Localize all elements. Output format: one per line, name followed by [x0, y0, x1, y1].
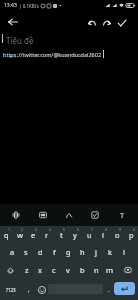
- button[interactable]: Back: [4, 13, 22, 31]
- button[interactable]: f: [47, 243, 61, 261]
- staticText: ?123: [6, 287, 16, 293]
- button[interactable]: i: [96, 226, 110, 243]
- staticText: j: [95, 247, 97, 257]
- staticText: s: [24, 247, 28, 257]
- staticText: 6: [77, 227, 80, 232]
- staticText: y: [73, 230, 77, 240]
- staticText: 8: [105, 227, 108, 232]
- staticText: g: [66, 247, 71, 257]
- button[interactable]: Emoji: [36, 279, 48, 300]
- staticText: w: [17, 230, 23, 240]
- staticText: v: [66, 265, 70, 275]
- staticText: 2: [21, 227, 24, 232]
- staticText: h: [80, 247, 85, 257]
- button[interactable]: Backspace: [117, 261, 138, 279]
- button[interactable]: x: [33, 261, 47, 279]
- button[interactable]: g: [61, 243, 75, 261]
- staticText: 3: [35, 227, 38, 232]
- button[interactable]: Clipboard: [85, 205, 105, 225]
- staticText: r: [45, 230, 49, 240]
- staticText: z: [25, 265, 29, 275]
- button[interactable]: l: [117, 243, 131, 261]
- button[interactable]: w: [13, 226, 26, 243]
- button[interactable]: z: [20, 261, 33, 279]
- staticText: o: [115, 230, 120, 240]
- button[interactable]: t: [54, 226, 68, 243]
- staticText: n: [94, 265, 99, 275]
- staticText: e: [31, 230, 36, 240]
- button[interactable]: n: [89, 261, 103, 279]
- staticText: f: [53, 247, 56, 257]
- staticText: 5: [63, 227, 66, 232]
- staticText: ://twitter.com/@kuanducdai2602: [17, 51, 102, 58]
- button[interactable]: s: [19, 243, 33, 261]
- button[interactable]: Voice input: [6, 205, 26, 225]
- button[interactable]: r: [40, 226, 54, 243]
- staticText: 4: [49, 227, 52, 232]
- staticText: u: [87, 230, 92, 240]
- button[interactable]: Redo: [99, 15, 114, 30]
- button[interactable]: q: [0, 226, 13, 243]
- button[interactable]: k: [103, 243, 117, 261]
- staticText: a: [10, 247, 15, 257]
- staticText: 7: [91, 227, 94, 232]
- button[interactable]: Handwriting: [59, 205, 79, 225]
- button[interactable]: v: [61, 261, 75, 279]
- button[interactable]: c: [47, 261, 61, 279]
- staticText: q: [4, 230, 9, 240]
- button[interactable]: h: [75, 243, 89, 261]
- staticText: c: [52, 265, 56, 275]
- staticText: .: [108, 286, 110, 294]
- staticText: d: [38, 247, 43, 257]
- button[interactable]: Enter: [114, 282, 135, 295]
- staticText: i: [102, 230, 104, 240]
- staticText: p: [129, 230, 134, 240]
- button[interactable]: o: [110, 226, 124, 243]
- button[interactable]: j: [89, 243, 103, 261]
- button[interactable]: Undo: [84, 15, 99, 30]
- staticText: x: [38, 265, 42, 275]
- button[interactable]: y: [68, 226, 82, 243]
- staticText: m: [106, 265, 114, 275]
- staticText: b: [80, 265, 85, 275]
- button[interactable]: a: [6, 243, 19, 261]
- button[interactable]: Shift: [0, 261, 20, 279]
- staticText: 9: [119, 227, 122, 232]
- staticText: 1: [8, 227, 11, 232]
- staticText: t: [60, 230, 63, 240]
- staticText: k: [108, 247, 113, 257]
- button[interactable]: Text formatting: [112, 205, 132, 225]
- button[interactable]: m: [103, 261, 117, 279]
- button[interactable]: .: [103, 279, 114, 300]
- staticText: 0: [133, 227, 136, 232]
- button[interactable]: Save: [114, 15, 129, 30]
- staticText: 13:43: [4, 2, 17, 9]
- staticText: l: [123, 247, 125, 257]
- button[interactable]: ?123: [0, 279, 22, 300]
- staticText: https: [3, 51, 17, 58]
- button[interactable]: u: [82, 226, 96, 243]
- button[interactable]: ,: [22, 279, 36, 300]
- staticText: | 0.1KB/s: [19, 3, 39, 9]
- staticText: T: [120, 210, 125, 220]
- button[interactable]: e: [26, 226, 40, 243]
- button[interactable]: b: [75, 261, 89, 279]
- button[interactable]: Stickers: [33, 205, 53, 225]
- staticText: ,: [28, 286, 30, 294]
- button[interactable]: p: [124, 226, 138, 243]
- button[interactable]: d: [33, 243, 47, 261]
- staticText: Tiêu đề: [6, 35, 34, 46]
